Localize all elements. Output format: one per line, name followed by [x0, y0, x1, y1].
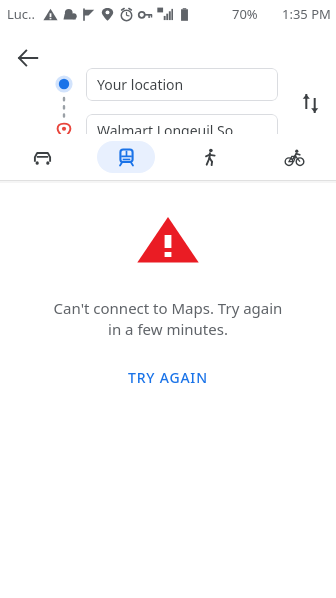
button[interactable]: Walmart Longeuil So…: [86, 114, 278, 147]
button[interactable]: Swap origin and destination: [290, 83, 330, 123]
staticText: Walmart Longeuil So…: [97, 121, 245, 140]
staticText: Can't connect to Maps. Try again in a fe…: [20, 298, 316, 340]
staticText: Luc..: [7, 5, 36, 23]
staticText: 1:35 PM: [282, 5, 331, 23]
button[interactable]: Walking: [181, 141, 239, 173]
button[interactable]: Cycling: [265, 141, 323, 173]
button[interactable]: TRY AGAIN: [116, 362, 220, 393]
button[interactable]: Your location: [86, 68, 278, 101]
staticText: 70%: [232, 5, 258, 23]
button[interactable]: Back: [8, 38, 48, 78]
staticText: TRY AGAIN: [128, 368, 208, 387]
staticText: Your location: [97, 75, 184, 94]
button[interactable]: Transit: [97, 141, 155, 173]
button[interactable]: Driving: [13, 141, 71, 173]
